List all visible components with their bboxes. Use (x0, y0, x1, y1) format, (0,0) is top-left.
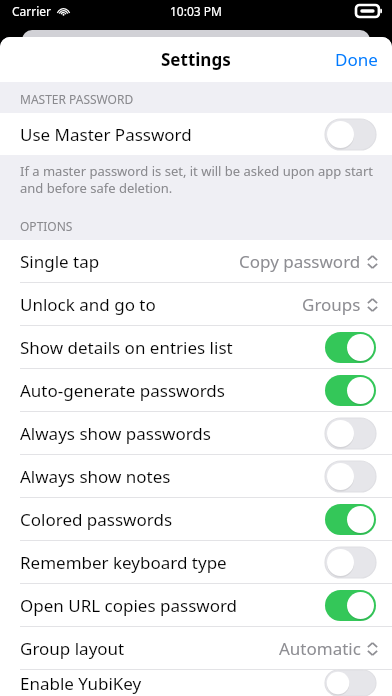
staticText: Show details on entries list (20, 336, 233, 359)
staticText: Carrier (12, 3, 52, 19)
staticText: Always show notes (20, 465, 171, 488)
staticText: Done (335, 48, 378, 71)
staticText: Settings (161, 48, 231, 71)
staticText: Groups (302, 293, 361, 316)
button[interactable]: Off (325, 119, 376, 150)
staticText: Always show passwords (20, 422, 211, 445)
button[interactable]: Show details on entries list (0, 326, 392, 368)
button[interactable]: On (325, 504, 376, 535)
button[interactable]: Off (325, 418, 376, 449)
staticText: Copy password (239, 250, 361, 273)
button[interactable]: Single tap (0, 240, 392, 282)
staticText: If a master password is set, it will be … (20, 162, 373, 197)
staticText: Unlock and go to (20, 293, 156, 316)
button[interactable]: Done (321, 38, 392, 81)
button[interactable]: Group layout (0, 627, 392, 669)
staticText: Auto-generate passwords (20, 379, 225, 402)
button[interactable]: Enable YubiKey (0, 670, 392, 696)
button[interactable]: Remember keyboard type (0, 541, 392, 583)
button[interactable]: Unlock and go to (0, 283, 392, 325)
button[interactable]: Colored passwords (0, 498, 392, 540)
staticText: Open URL copies password (20, 594, 238, 617)
staticText: Enable YubiKey (20, 672, 142, 695)
staticText: MASTER PASSWORD (20, 91, 134, 107)
button[interactable]: Off (325, 670, 376, 696)
button[interactable]: On (325, 332, 376, 363)
staticText: Colored passwords (20, 508, 173, 531)
staticText: Group layout (20, 637, 125, 660)
staticText: Single tap (20, 250, 100, 273)
button[interactable]: On (325, 590, 376, 621)
staticText: Use Master Password (20, 123, 192, 146)
button[interactable]: Auto-generate passwords (0, 369, 392, 411)
button[interactable]: Open URL copies password (0, 584, 392, 626)
staticText: Remember keyboard type (20, 551, 227, 574)
staticText: Automatic (279, 637, 361, 660)
staticText: 10:03 PM (170, 3, 222, 19)
button[interactable]: Always show passwords (0, 412, 392, 454)
button[interactable]: Always show notes (0, 455, 392, 497)
button[interactable]: Off (325, 461, 376, 492)
button[interactable]: Use Master Password (0, 113, 392, 155)
staticText: OPTIONS (20, 218, 73, 234)
button[interactable]: Off (325, 547, 376, 578)
button[interactable]: On (325, 375, 376, 406)
